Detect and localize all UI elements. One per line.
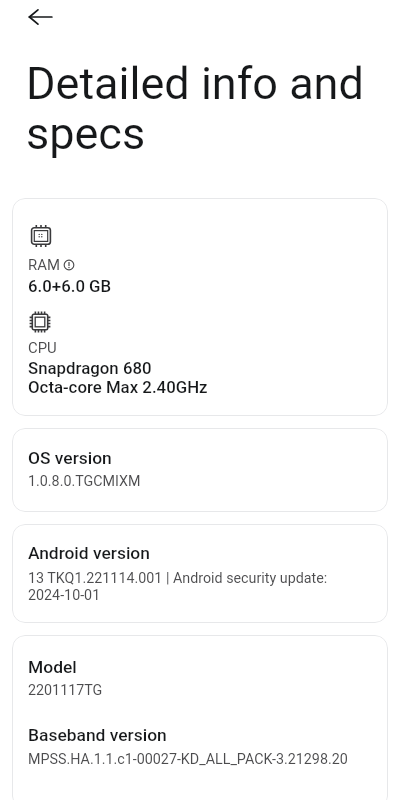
staticText: RAM bbox=[28, 256, 60, 273]
staticText: OS version bbox=[28, 448, 112, 468]
staticText: CPU bbox=[28, 339, 57, 356]
staticText: Baseband version bbox=[28, 725, 167, 745]
staticText: Snapdragon 680 Octa-core Max 2.40GHz bbox=[28, 358, 208, 397]
staticText: 13 TKQ1.221114.001 | Android security up… bbox=[28, 570, 328, 604]
staticText: MPSS.HA.1.1.c1-00027-KD_ALL_PACK-3.21298… bbox=[28, 751, 348, 768]
staticText: 2201117TG bbox=[28, 682, 103, 699]
button[interactable]: Android version bbox=[12, 524, 388, 623]
staticText: 6.0+6.0 GB bbox=[28, 276, 112, 296]
staticText: Detailed info and specs bbox=[26, 57, 370, 160]
button[interactable]: Back bbox=[28, 5, 52, 29]
staticText: Android version bbox=[28, 543, 150, 563]
button[interactable]: Model bbox=[12, 635, 388, 800]
staticText: Model bbox=[28, 657, 77, 677]
button[interactable]: OS version bbox=[12, 428, 388, 512]
button[interactable]: RAM bbox=[12, 198, 388, 416]
staticText: 1.0.8.0.TGCMIXM bbox=[28, 473, 141, 490]
